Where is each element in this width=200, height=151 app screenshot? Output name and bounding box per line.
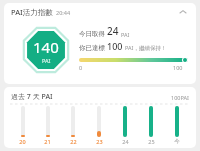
staticText: 今日取得 xyxy=(79,30,105,38)
staticText: 140 xyxy=(33,37,59,57)
staticText: 20 xyxy=(19,138,26,145)
staticText: 100 xyxy=(173,64,183,71)
staticText: 22 xyxy=(70,138,77,145)
staticText: 今 xyxy=(174,138,180,145)
staticText: 0 xyxy=(79,64,83,71)
staticText: 100PAI xyxy=(171,94,189,101)
staticText: 24 xyxy=(122,138,129,145)
staticText: 過去 7 天 PAI xyxy=(11,92,53,102)
staticText: 20:44 xyxy=(56,9,71,16)
staticText: 21 xyxy=(44,138,51,145)
button[interactable] xyxy=(86,104,112,137)
button[interactable] xyxy=(164,104,190,137)
staticText: PAI xyxy=(121,31,130,38)
button[interactable] xyxy=(112,104,138,137)
button[interactable] xyxy=(35,104,60,137)
staticText: 100 xyxy=(107,40,123,52)
staticText: PAI活力指數 xyxy=(11,7,53,17)
staticText: PAI xyxy=(42,57,51,64)
button[interactable] xyxy=(138,104,164,137)
button[interactable]: PAI活力指數 xyxy=(4,3,196,21)
button[interactable] xyxy=(10,104,35,137)
staticText: 25 xyxy=(148,138,155,145)
staticText: 你已達標 xyxy=(79,44,105,52)
staticText: 23 xyxy=(96,138,103,145)
staticText: 24 xyxy=(107,24,119,38)
staticText: PAI，繼續保持！ xyxy=(125,44,167,52)
button[interactable] xyxy=(60,104,86,137)
button[interactable]: 收合 xyxy=(176,5,190,19)
